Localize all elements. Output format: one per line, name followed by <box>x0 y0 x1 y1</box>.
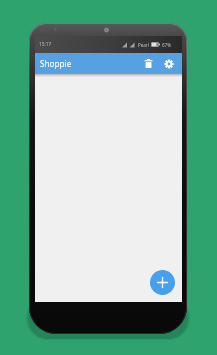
staticText: 15:17 <box>39 41 52 48</box>
staticText: Pearl <box>138 42 149 48</box>
button[interactable] <box>160 55 177 72</box>
button[interactable] <box>140 55 157 72</box>
staticText: Shoppie <box>40 58 72 69</box>
button[interactable] <box>150 270 175 295</box>
staticText: 67% <box>162 42 171 48</box>
